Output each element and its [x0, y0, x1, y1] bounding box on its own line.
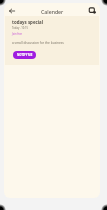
staticText: Today . 10:15: [12, 26, 28, 30]
staticText: Join free: [12, 32, 23, 36]
button[interactable]: Calendar view: [86, 4, 99, 17]
button[interactable]: NOTIFY ME: [13, 51, 36, 59]
button[interactable]: Back: [5, 4, 18, 17]
staticText: NOTIFY ME: [17, 53, 33, 57]
staticText: todays special: [12, 19, 44, 25]
staticText: Calender: [41, 8, 64, 15]
staticText: a small discussion for the business: [12, 41, 64, 45]
